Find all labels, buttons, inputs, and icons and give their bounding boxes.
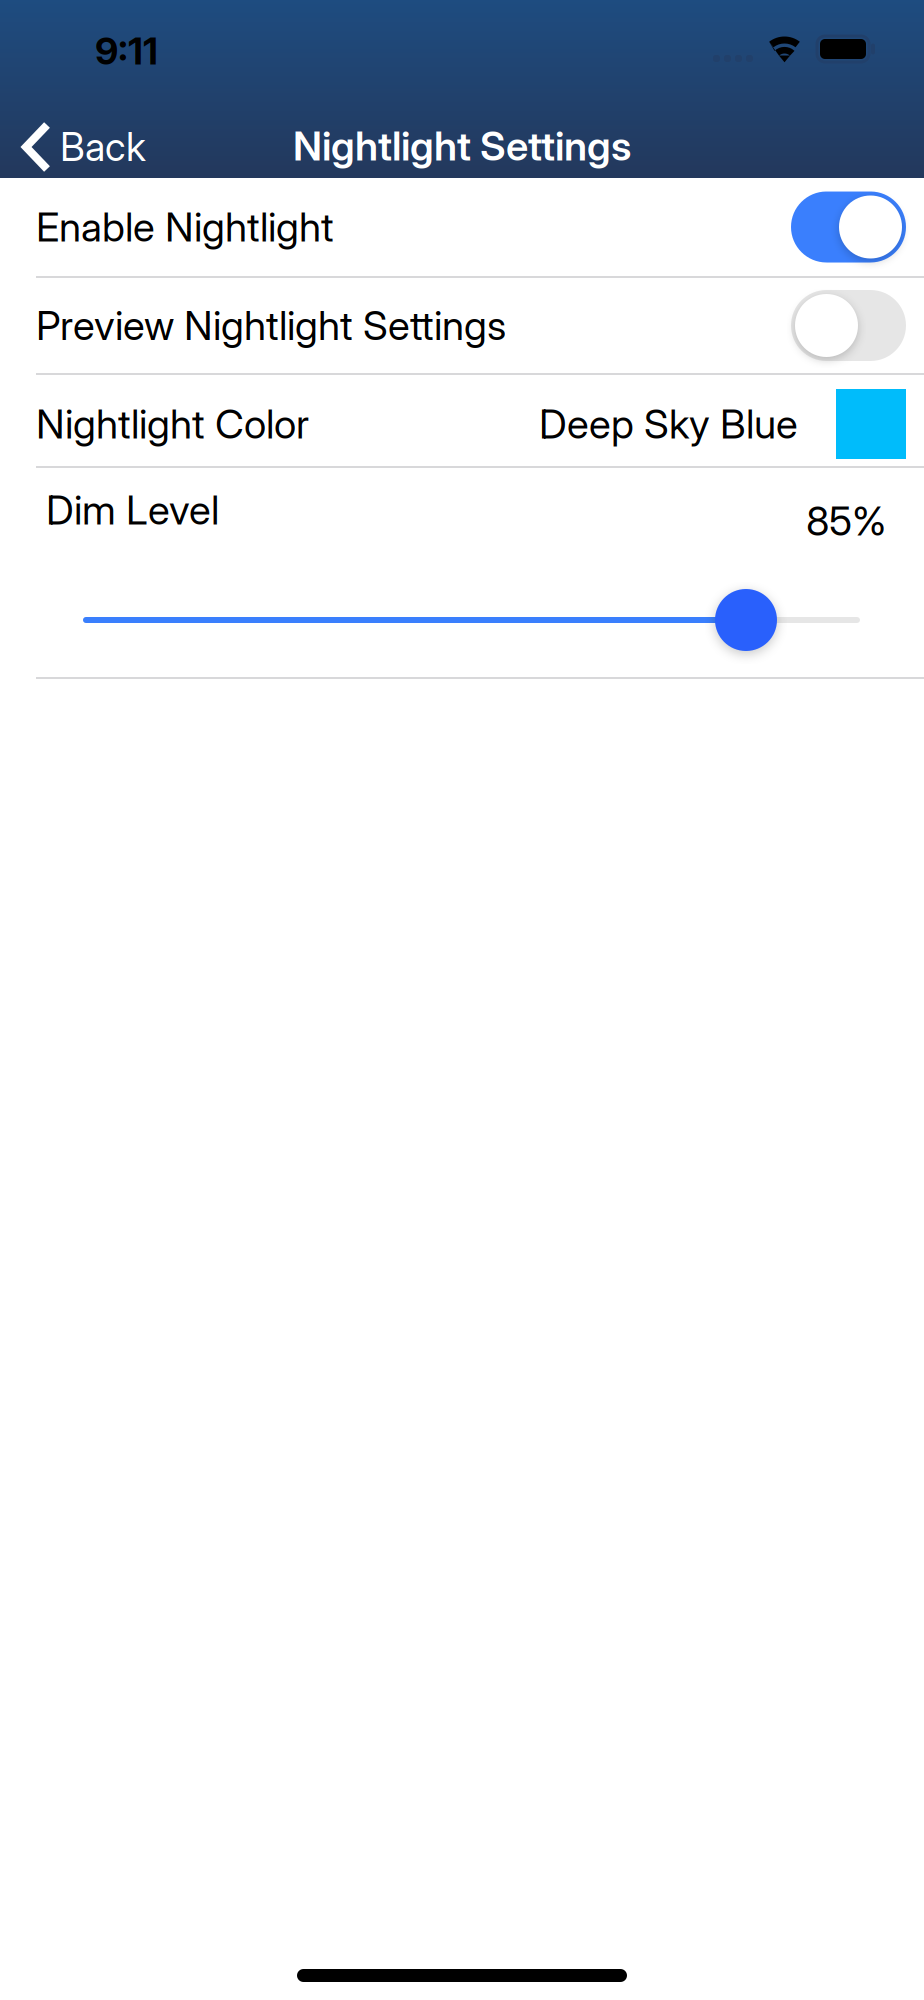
staticText: Deep Sky Blue [539, 400, 798, 448]
button[interactable]: Preview Nightlight Settings [0, 278, 924, 373]
button[interactable]: Enable Nightlight [0, 178, 924, 276]
staticText: Back [60, 124, 146, 170]
staticText: Enable Nightlight [36, 203, 334, 251]
staticText: 85% [806, 497, 886, 545]
button[interactable]: Back [0, 121, 230, 173]
staticText: Nightlight Settings [293, 122, 631, 170]
staticText: Nightlight Color [36, 400, 309, 448]
staticText: Dim Level [46, 486, 219, 534]
button[interactable]: Nightlight Color [0, 375, 924, 466]
staticText: Preview Nightlight Settings [36, 301, 506, 350]
staticText: 9:11 [95, 28, 158, 74]
